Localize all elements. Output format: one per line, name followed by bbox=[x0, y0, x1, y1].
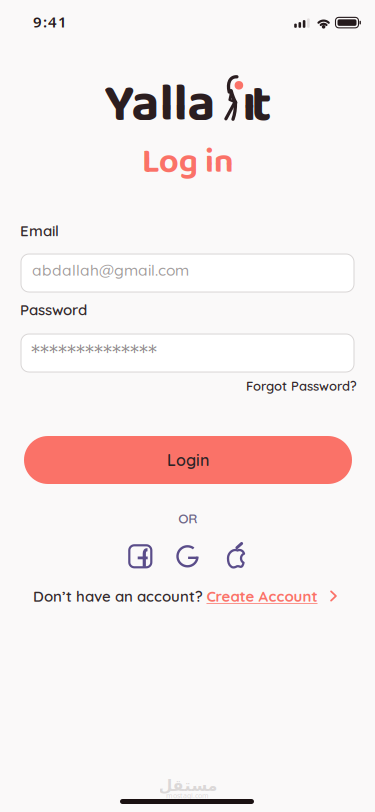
staticText: ************** bbox=[31, 335, 157, 372]
button[interactable]: abdallah@gmail.com bbox=[21, 254, 354, 292]
button[interactable]: Forgot Password? bbox=[246, 378, 357, 394]
button[interactable]: Login bbox=[24, 436, 352, 484]
button[interactable] bbox=[128, 544, 152, 568]
button[interactable] bbox=[175, 544, 199, 568]
staticText: abdallah@gmail.com bbox=[32, 260, 189, 280]
button[interactable] bbox=[225, 539, 249, 569]
staticText: Create Account bbox=[206, 587, 317, 605]
staticText: مستقل bbox=[158, 776, 217, 795]
staticText: Forgot Password? bbox=[246, 378, 357, 394]
staticText: Password bbox=[20, 300, 87, 319]
button[interactable]: Create Account bbox=[206, 587, 337, 605]
staticText: Don’t have an account? bbox=[33, 587, 203, 605]
staticText: ıt bbox=[242, 63, 271, 147]
staticText: Login bbox=[167, 450, 209, 470]
staticText: Yalla bbox=[104, 63, 215, 147]
staticText: mostaql.com bbox=[166, 791, 209, 800]
staticText: OR bbox=[178, 510, 197, 527]
button[interactable]: ************** bbox=[21, 334, 354, 372]
staticText: Email bbox=[20, 221, 59, 240]
staticText: 9:41 bbox=[33, 12, 67, 32]
staticText: Log in bbox=[142, 134, 234, 190]
